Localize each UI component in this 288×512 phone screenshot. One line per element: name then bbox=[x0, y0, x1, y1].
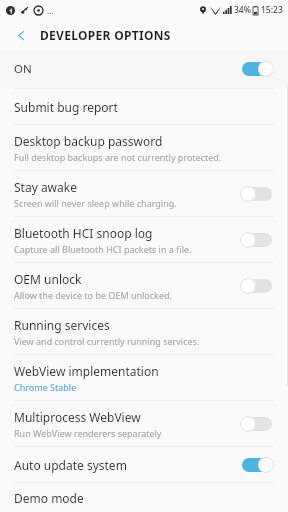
staticText: 15:23 bbox=[261, 4, 283, 16]
button[interactable]: Submit bug report bbox=[0, 89, 288, 124]
staticText: Demo mode bbox=[14, 490, 84, 506]
button[interactable]: Off bbox=[240, 184, 274, 204]
button[interactable]: WebView implementation bbox=[0, 355, 288, 400]
button[interactable]: Back bbox=[8, 22, 34, 48]
staticText: WebView implementation bbox=[14, 363, 159, 379]
staticText: Chrome Stable bbox=[14, 381, 77, 393]
button[interactable]: Off bbox=[240, 230, 274, 250]
staticText: Desktop backup password bbox=[14, 133, 163, 149]
button[interactable]: Bluetooth HCI snoop log bbox=[0, 217, 288, 262]
button[interactable]: Auto update system bbox=[0, 447, 288, 482]
staticText: Screen will never sleep while charging. bbox=[14, 197, 177, 209]
staticText: Running services bbox=[14, 317, 110, 333]
staticText: ... bbox=[47, 5, 54, 16]
button[interactable]: On bbox=[240, 59, 274, 79]
staticText: Auto update system bbox=[14, 457, 127, 473]
staticText: Submit bug report bbox=[14, 99, 118, 115]
staticText: View and control currently running servi… bbox=[14, 335, 200, 347]
button[interactable]: Stay awake bbox=[0, 171, 288, 216]
button[interactable]: OEM unlock bbox=[0, 263, 288, 308]
button[interactable]: On bbox=[240, 455, 274, 475]
staticText: Run WebView renderers separately bbox=[14, 427, 162, 439]
staticText: OEM unlock bbox=[14, 271, 82, 287]
button[interactable]: Off bbox=[240, 276, 274, 296]
button[interactable]: Off bbox=[240, 414, 274, 434]
button[interactable]: Desktop backup password bbox=[0, 125, 288, 170]
button[interactable]: Demo mode bbox=[0, 483, 288, 512]
staticText: Allow the device to be OEM unlocked. bbox=[14, 289, 172, 301]
staticText: Multiprocess WebView bbox=[14, 409, 141, 425]
staticText: Full desktop backups are not currently p… bbox=[14, 151, 222, 163]
button[interactable]: Running services bbox=[0, 309, 288, 354]
staticText: ON bbox=[14, 61, 240, 77]
button[interactable]: ON bbox=[0, 50, 288, 88]
staticText: 34% bbox=[234, 4, 251, 16]
staticText: Capture all Bluetooth HCI packets in a f… bbox=[14, 243, 192, 255]
button[interactable]: Multiprocess WebView bbox=[0, 401, 288, 446]
staticText: DEVELOPER OPTIONS bbox=[40, 27, 171, 43]
staticText: Stay awake bbox=[14, 179, 77, 195]
staticText: Bluetooth HCI snoop log bbox=[14, 225, 153, 241]
